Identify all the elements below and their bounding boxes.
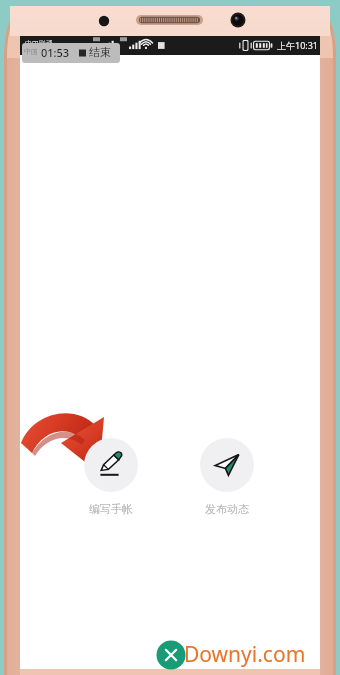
button[interactable]: 发布动态 — [200, 438, 254, 518]
button[interactable]: 编写手帐 — [84, 438, 138, 518]
